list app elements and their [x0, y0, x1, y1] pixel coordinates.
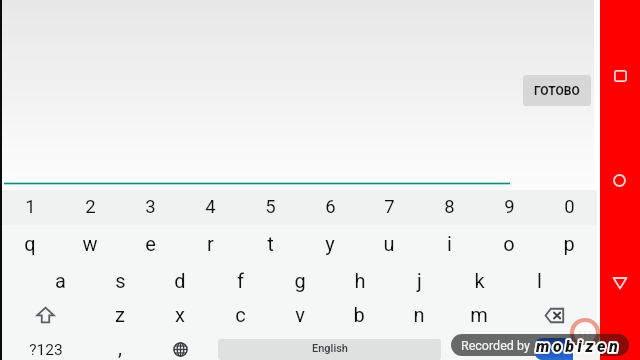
button[interactable]: t [240, 225, 300, 261]
button[interactable]: c [210, 296, 270, 332]
staticText: m [470, 303, 488, 326]
button[interactable]: y [300, 225, 360, 261]
button[interactable]: z [90, 296, 150, 332]
button[interactable]: ГОТОВО [523, 75, 591, 106]
staticText: 1 [25, 196, 36, 218]
button[interactable]: n [389, 296, 449, 332]
button[interactable]: Back [600, 263, 640, 303]
button[interactable]: Home [599, 160, 639, 200]
button[interactable]: m [449, 296, 509, 332]
staticText: i [447, 232, 452, 255]
staticText: 5 [265, 196, 276, 218]
button[interactable]: o [479, 225, 539, 261]
staticText: 2 [85, 196, 96, 218]
staticText: o [503, 232, 515, 255]
staticText: b [353, 303, 365, 326]
button[interactable]: w [60, 225, 120, 261]
staticText: 8 [444, 196, 455, 218]
button[interactable]: 8 [419, 189, 479, 225]
staticText: 6 [325, 196, 336, 218]
staticText: v [295, 303, 305, 326]
button[interactable]: s [90, 262, 150, 298]
staticText: ?123 [29, 341, 63, 359]
button[interactable]: Recent apps [600, 56, 640, 96]
button[interactable]: 9 [479, 189, 539, 225]
button[interactable]: 0 [539, 189, 599, 225]
button[interactable]: 2 [60, 189, 120, 225]
button[interactable]: ?123 [16, 332, 76, 360]
button[interactable]: x [150, 296, 210, 332]
staticText: g [294, 269, 306, 292]
staticText: 4 [205, 196, 216, 218]
button[interactable]: b [329, 296, 389, 332]
button[interactable]: e [120, 225, 180, 261]
button[interactable]: a [30, 262, 90, 298]
button[interactable]: h [330, 262, 390, 298]
button[interactable]: English [218, 339, 441, 360]
button[interactable]: j [389, 262, 449, 298]
button[interactable]: , [90, 329, 150, 360]
button[interactable]: p [539, 225, 599, 261]
button[interactable]: f [210, 262, 270, 298]
staticText: n [413, 303, 425, 326]
staticText: r [207, 232, 214, 255]
button[interactable]: g [270, 262, 330, 298]
staticText: d [174, 269, 186, 292]
staticText: h [354, 269, 366, 292]
staticText: c [235, 303, 246, 326]
staticText: w [82, 232, 98, 255]
staticText: 3 [145, 196, 156, 218]
button[interactable]: 4 [180, 189, 240, 225]
staticText: a [55, 269, 66, 292]
staticText: mobizen [536, 337, 622, 356]
staticText: t [267, 232, 274, 255]
button[interactable]: q [0, 225, 60, 261]
staticText: e [145, 232, 156, 255]
button[interactable]: Shift [15, 297, 75, 333]
button[interactable]: i [419, 225, 479, 261]
staticText: u [383, 232, 395, 255]
button[interactable]: 5 [240, 189, 300, 225]
staticText: mobizen [536, 337, 622, 356]
staticText: 0 [564, 196, 575, 218]
staticText: j [417, 269, 422, 292]
staticText: z [115, 303, 125, 326]
staticText: f [237, 269, 244, 292]
button[interactable]: l [509, 262, 569, 298]
button[interactable]: d [150, 262, 210, 298]
button[interactable]: 1 [0, 189, 60, 225]
button[interactable]: k [449, 262, 509, 298]
staticText: ГОТОВО [534, 84, 580, 98]
staticText: y [325, 232, 335, 255]
button[interactable]: Backspace [524, 297, 584, 333]
staticText: s [115, 269, 126, 292]
button[interactable]: 6 [300, 189, 360, 225]
staticText: l [537, 269, 542, 292]
staticText: q [24, 232, 36, 255]
staticText: Recorded by [461, 338, 530, 353]
staticText: , [118, 336, 122, 359]
button[interactable]: v [270, 296, 330, 332]
staticText: 9 [504, 196, 515, 218]
staticText: English [312, 342, 348, 355]
button[interactable]: u [359, 225, 419, 261]
staticText: 7 [384, 196, 395, 218]
button[interactable]: 7 [359, 189, 419, 225]
button[interactable]: r [180, 225, 240, 261]
staticText: p [563, 232, 575, 255]
staticText: x [175, 303, 185, 326]
staticText: k [474, 269, 485, 292]
button[interactable]: 3 [120, 189, 180, 225]
button[interactable]: Change keyboard language [152, 336, 208, 360]
